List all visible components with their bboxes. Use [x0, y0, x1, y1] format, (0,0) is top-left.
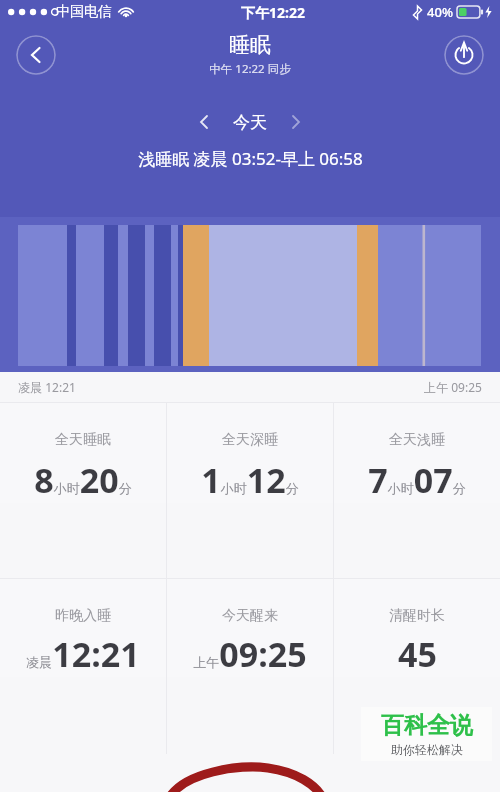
staticText: 今天醒来 — [222, 607, 278, 625]
button[interactable]: Sync — [444, 35, 484, 75]
staticText: 上午09:25 — [193, 631, 307, 677]
staticText: 全天浅睡 — [389, 431, 445, 449]
staticText: 全天睡眠 — [55, 431, 111, 449]
staticText: 7小时07分 — [368, 457, 466, 503]
button[interactable]: 今天 — [233, 112, 267, 133]
button[interactable]: Back — [16, 35, 56, 75]
button[interactable]: 全天深睡 — [167, 403, 333, 503]
staticText: 45 — [398, 631, 437, 677]
staticText: 凌晨12:21 — [26, 631, 140, 677]
button[interactable]: 全天睡眠 — [0, 403, 166, 503]
staticText: 中午 12:22 同步 — [209, 61, 291, 77]
button[interactable]: 今天醒来 — [167, 579, 333, 677]
staticText: 1小时12分 — [201, 457, 299, 503]
staticText: 睡眠 — [229, 32, 271, 58]
staticText: 清醒时长 — [389, 607, 445, 625]
staticText: 凌晨 12:21 — [18, 379, 76, 395]
staticText: 昨晚入睡 — [55, 607, 111, 625]
staticText: 百科全说 — [381, 711, 473, 740]
staticText: 8小时20分 — [34, 457, 132, 503]
button[interactable]: Next day — [281, 107, 311, 137]
staticText: 助你轻松解决 — [391, 742, 463, 757]
button[interactable]: 昨晚入睡 — [0, 579, 166, 677]
staticText: 浅睡眠 凌晨 03:52-早上 06:58 — [138, 147, 363, 170]
button[interactable]: 清醒时长 — [334, 579, 500, 677]
staticText: 上午 09:25 — [424, 379, 482, 395]
button[interactable]: 全天浅睡 — [334, 403, 500, 503]
button[interactable]: Previous day — [189, 107, 219, 137]
staticText: 全天深睡 — [222, 431, 278, 449]
staticText: 下午12:22 — [241, 3, 305, 22]
staticText: 40% — [427, 3, 453, 21]
staticText: 中国电信 — [56, 3, 112, 21]
